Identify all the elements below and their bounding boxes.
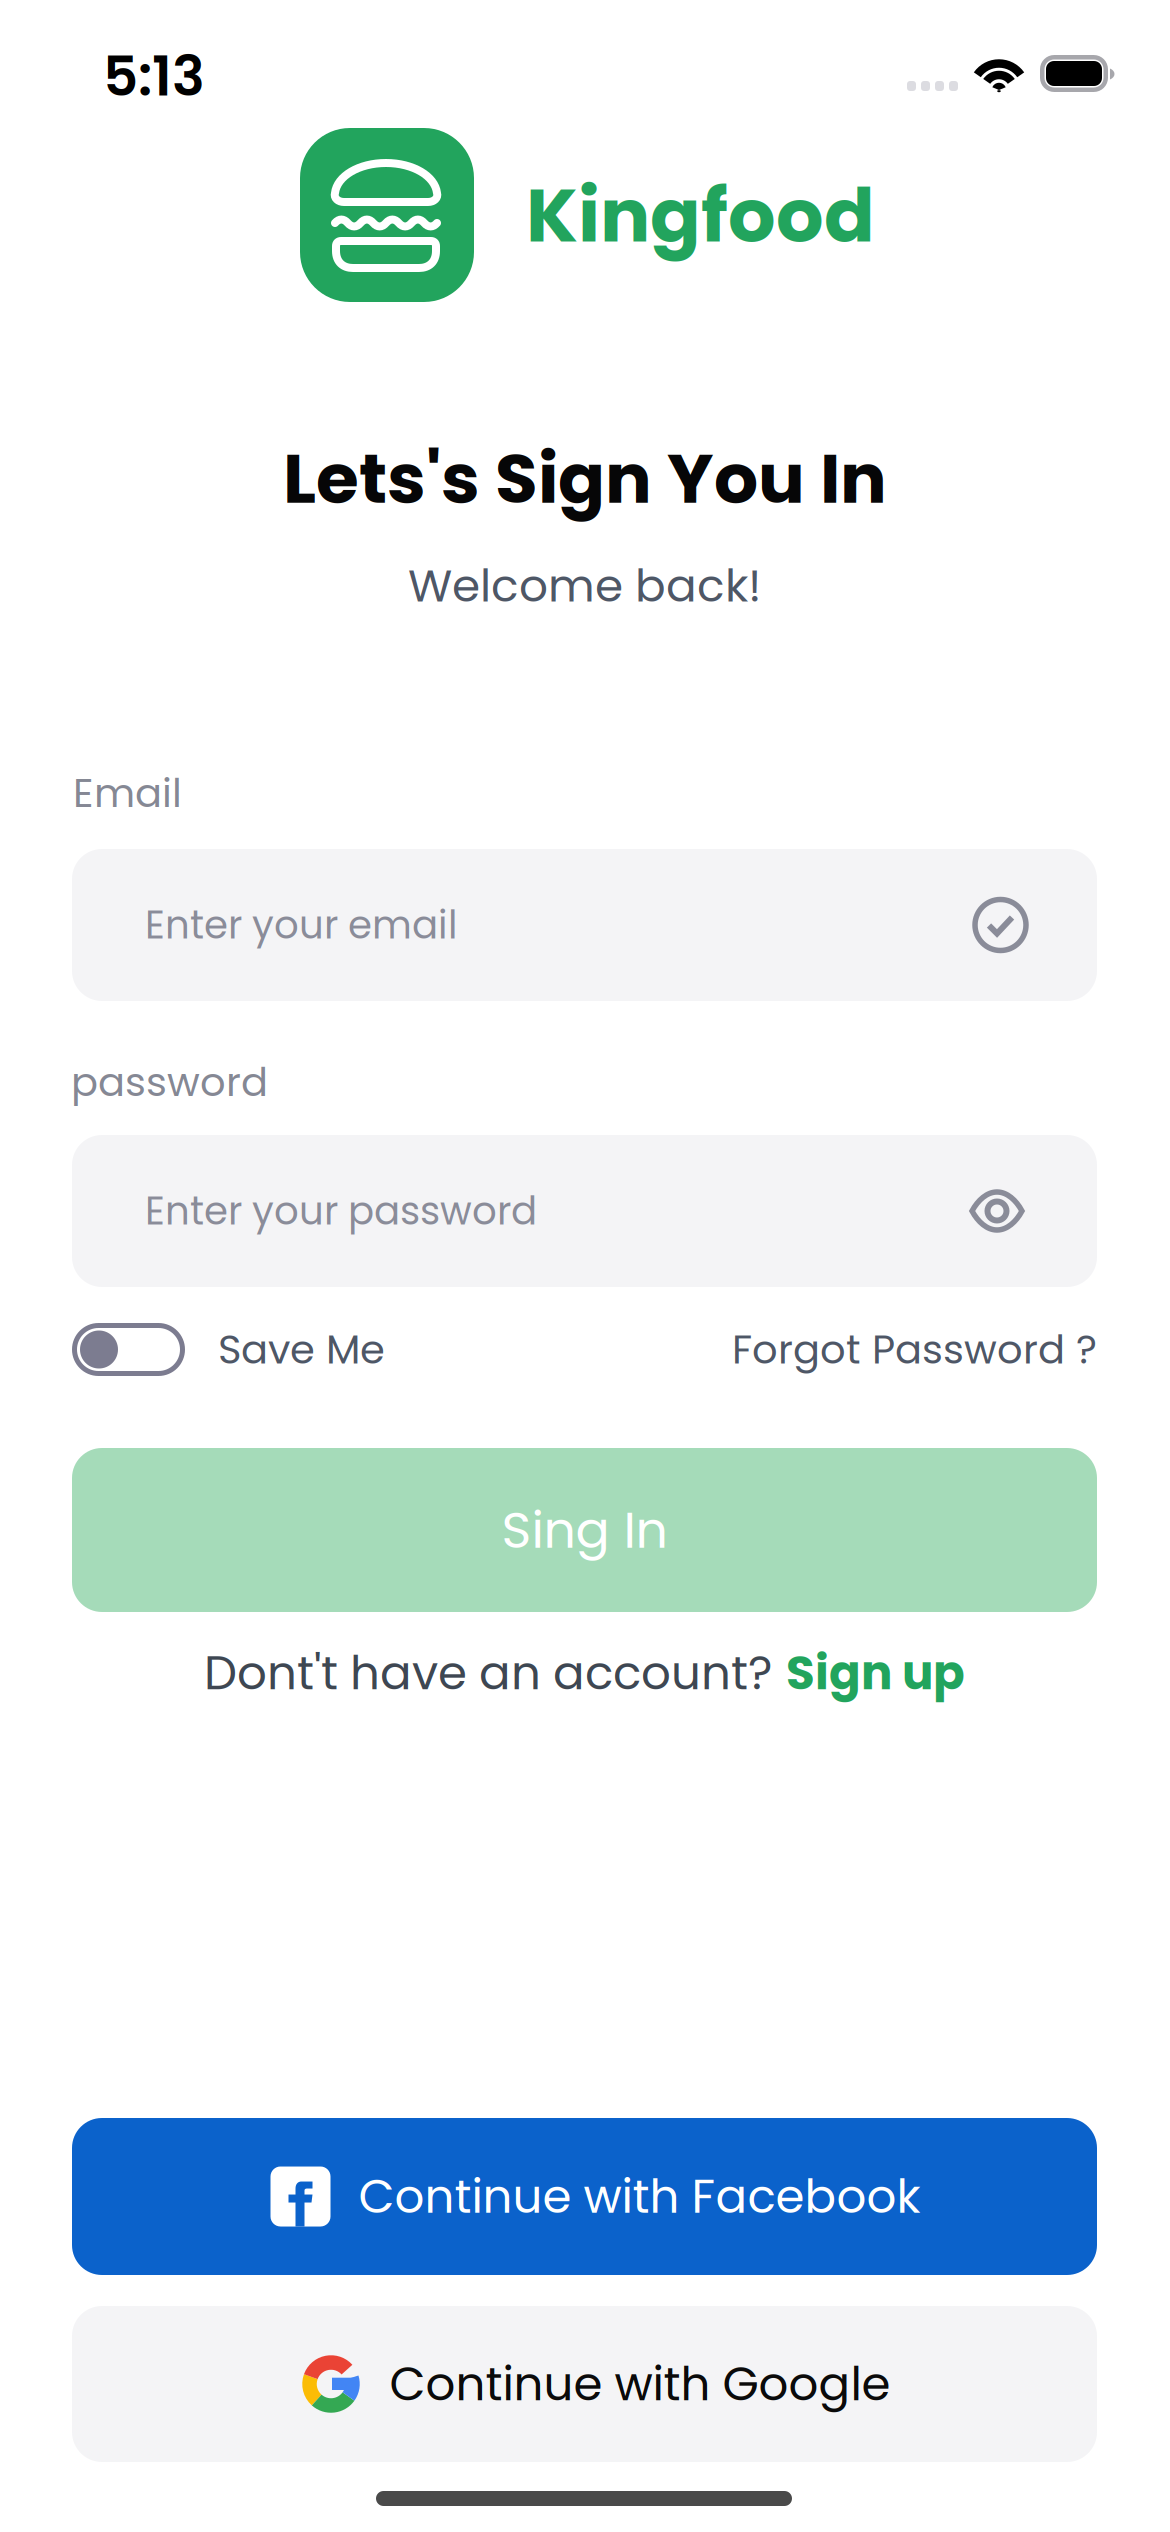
button[interactable]: Continue with Facebook	[72, 2118, 1097, 2275]
staticText: Save Me	[218, 1321, 385, 1377]
staticText: Welcome back!	[408, 554, 762, 617]
staticText: Kingfood	[526, 163, 875, 267]
staticText: Continue with Facebook	[358, 2164, 920, 2229]
staticText: Email	[73, 765, 182, 821]
staticText: Lets's Sign You In	[283, 430, 887, 527]
staticText: Enter your password	[145, 1184, 537, 1238]
staticText: password	[71, 1054, 268, 1110]
staticText: Continue with Google	[389, 2351, 890, 2417]
button[interactable]: Continue with Google	[72, 2306, 1097, 2462]
staticText: Sing In	[501, 1494, 667, 1565]
staticText: Sign up	[786, 1640, 965, 1706]
button[interactable]: Save Me	[72, 1323, 385, 1376]
button[interactable]: Sing In	[72, 1448, 1097, 1612]
button[interactable]: Enter your email	[72, 849, 1097, 1001]
staticText: Enter your email	[145, 898, 458, 952]
staticText: Dont't have an account?	[204, 1640, 772, 1706]
button[interactable]: Forgot Password ?	[697, 1323, 1097, 1376]
staticText: Forgot Password ?	[732, 1321, 1097, 1377]
staticText: 5:13	[103, 38, 205, 114]
button[interactable]: Enter your password	[72, 1135, 1097, 1287]
button[interactable]: Dont't have an account?	[72, 1643, 1097, 1703]
